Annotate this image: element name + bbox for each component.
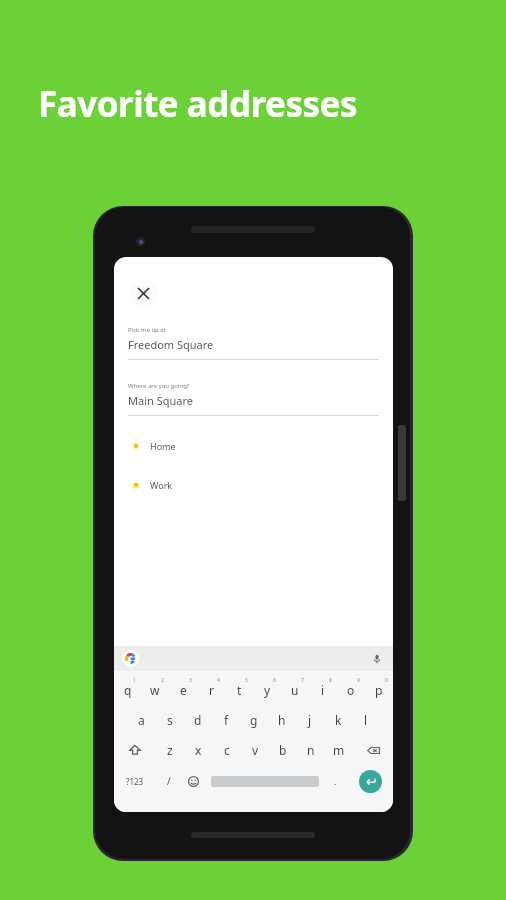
button[interactable]: o <box>337 675 365 705</box>
staticText: 8 <box>329 677 332 684</box>
button[interactable]: Google <box>122 650 139 667</box>
staticText: w <box>150 682 160 698</box>
button[interactable]: w <box>141 675 169 705</box>
button[interactable]: r <box>197 675 225 705</box>
staticText: a <box>138 712 145 728</box>
staticText: k <box>335 712 342 728</box>
button[interactable]: / <box>156 765 181 797</box>
staticText: n <box>307 742 315 758</box>
staticText: o <box>347 682 355 698</box>
staticText: Where are you going? <box>128 382 190 390</box>
staticText: 5 <box>245 677 248 684</box>
staticText: x <box>195 742 202 758</box>
staticText: l <box>364 712 368 728</box>
button[interactable]: l <box>352 705 380 735</box>
staticText: h <box>278 712 286 728</box>
staticText: j <box>308 712 312 728</box>
staticText: g <box>250 712 258 728</box>
staticText: 6 <box>273 677 276 684</box>
staticText: r <box>209 682 214 698</box>
button[interactable]: g <box>240 705 268 735</box>
staticText: 0 <box>385 677 388 684</box>
button[interactable]: h <box>268 705 296 735</box>
button[interactable]: . <box>323 765 348 797</box>
staticText: p <box>375 682 383 698</box>
staticText: z <box>167 742 173 758</box>
staticText: / <box>167 774 171 788</box>
button[interactable]: u <box>281 675 309 705</box>
button[interactable]: Shift <box>114 735 155 765</box>
staticText: q <box>124 682 132 698</box>
button[interactable]: Enter <box>359 770 382 793</box>
button[interactable]: j <box>296 705 324 735</box>
staticText: 7 <box>301 677 304 684</box>
staticText: 3 <box>189 677 192 684</box>
staticText: Work <box>150 479 173 491</box>
staticText: i <box>321 682 325 698</box>
button[interactable]: y <box>253 675 281 705</box>
staticText: Home <box>150 440 176 452</box>
button[interactable]: Close <box>129 279 158 308</box>
staticText: u <box>291 682 299 698</box>
staticText: v <box>252 742 259 758</box>
button[interactable]: n <box>297 735 325 765</box>
button[interactable]: b <box>269 735 297 765</box>
staticText: ?123 <box>126 776 144 787</box>
staticText: d <box>194 712 202 728</box>
staticText: . <box>334 775 337 787</box>
button[interactable]: a <box>127 705 156 735</box>
button[interactable]: Emoji <box>181 765 206 797</box>
staticText: 4 <box>217 677 220 684</box>
staticText: b <box>279 742 287 758</box>
staticText: 1 <box>133 677 136 684</box>
button[interactable]: Space <box>206 765 323 797</box>
staticText: c <box>224 742 230 758</box>
button[interactable]: i <box>309 675 337 705</box>
staticText: 2 <box>161 677 164 684</box>
staticText: m <box>333 742 345 758</box>
button[interactable]: Work <box>114 477 393 493</box>
button[interactable]: m <box>325 735 353 765</box>
button[interactable]: Voice input <box>370 652 384 666</box>
staticText: s <box>167 712 173 728</box>
button[interactable]: q <box>114 675 141 705</box>
staticText: Pick me up at <box>128 326 166 334</box>
button[interactable]: d <box>184 705 212 735</box>
staticText: f <box>224 712 229 728</box>
button[interactable]: ?123 <box>114 765 156 797</box>
staticText: t <box>237 682 242 698</box>
staticText: e <box>180 682 187 698</box>
button[interactable]: s <box>156 705 184 735</box>
button[interactable]: z <box>155 735 184 765</box>
button[interactable]: e <box>169 675 197 705</box>
button[interactable]: t <box>225 675 253 705</box>
button[interactable]: f <box>212 705 240 735</box>
staticText: Main Square <box>128 393 193 408</box>
button[interactable]: k <box>324 705 352 735</box>
staticText: Favorite addresses <box>38 80 357 128</box>
staticText: Freedom Square <box>128 337 214 352</box>
button[interactable]: v <box>241 735 269 765</box>
staticText: y <box>264 682 271 698</box>
button[interactable]: Home <box>114 438 393 454</box>
button[interactable]: Backspace <box>353 735 393 765</box>
button[interactable]: c <box>213 735 241 765</box>
button[interactable]: p <box>365 675 393 705</box>
button[interactable]: x <box>184 735 213 765</box>
staticText: 9 <box>357 677 360 684</box>
